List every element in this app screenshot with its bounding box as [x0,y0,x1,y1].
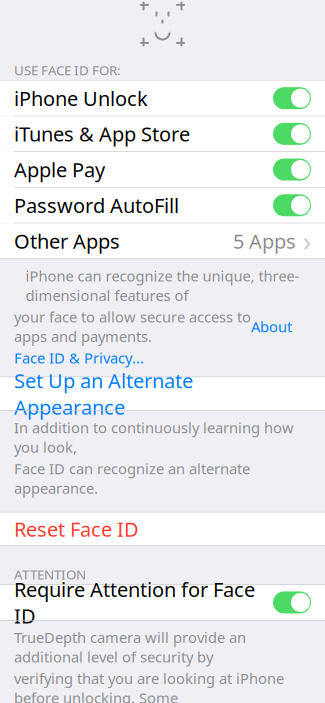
staticText: 5 Apps [233,228,296,254]
staticText: Set Up an Alternate Appearance [14,367,193,420]
staticText: Face ID can recognize an alternate appea… [14,459,250,498]
staticText: verifying that you are looking at iPhone… [14,669,284,703]
staticText: ATTENTION [14,565,86,583]
staticText: › [303,223,311,259]
button[interactable]: Other Apps [0,223,325,258]
button[interactable]: Password AutoFill [0,188,325,223]
staticText: Face ID & Privacy... [14,348,144,368]
button[interactable]: Apple Pay [0,152,325,187]
staticText: USE FACE ID FOR: [14,61,121,79]
staticText: Password AutoFill [14,192,179,219]
staticText: Other Apps [14,228,120,254]
staticText: your face to allow secure access to apps… [14,307,251,346]
staticText: TrueDepth camera will provide an additio… [14,628,246,667]
staticText: iPhone can recognize the unique, three-d… [25,266,299,305]
staticText: iPhone Unlock [14,85,148,111]
button[interactable]: iPhone Unlock [0,81,325,116]
button[interactable]: Set Up an Alternate Appearance [0,377,325,410]
staticText: About [251,317,292,336]
button[interactable]: Require Attention for Face ID [0,585,325,620]
button[interactable]: Reset Face ID [0,513,325,546]
staticText: Require Attention for Face ID [14,576,255,629]
button[interactable]: iTunes & App Store [0,116,325,151]
staticText: Reset Face ID [14,516,139,542]
staticText: Apple Pay [14,156,105,183]
staticText: In addition to continuously learning how… [14,418,294,457]
staticText: iTunes & App Store [14,121,190,147]
